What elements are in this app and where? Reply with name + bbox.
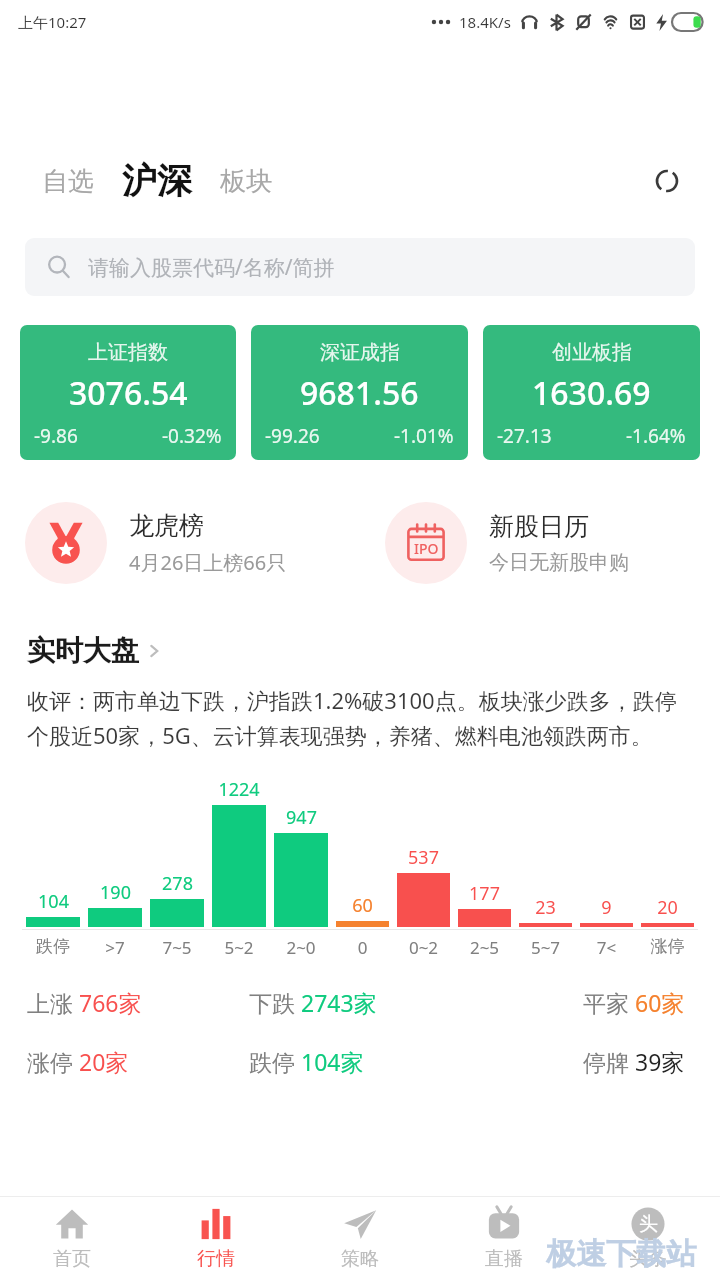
button[interactable]: 首页 xyxy=(0,1196,144,1280)
staticText: 停牌 xyxy=(583,1046,635,1077)
staticText: 1630.69 xyxy=(532,371,651,415)
button[interactable]: 深证成指 xyxy=(251,325,468,460)
staticText: 9681.56 xyxy=(300,371,419,415)
staticText: 涨停 xyxy=(27,1046,79,1077)
staticText: 1224 xyxy=(218,777,260,802)
staticText: 新股日历 xyxy=(489,511,589,542)
staticText: 上午10:27 xyxy=(18,12,87,32)
staticText: 20 xyxy=(657,895,678,920)
staticText: 177 xyxy=(469,881,500,906)
staticText: -9.86 xyxy=(34,423,78,449)
button[interactable]: 策略 xyxy=(288,1196,432,1280)
staticText: 平家 xyxy=(583,987,635,1018)
staticText: 0 xyxy=(332,936,393,959)
staticText: 9 xyxy=(601,895,612,920)
staticText: 自选 xyxy=(42,165,94,198)
staticText: 实时大盘 xyxy=(27,633,139,668)
staticText: 跌停 xyxy=(249,1046,301,1077)
staticText: 5~2 xyxy=(208,936,270,959)
button[interactable]: 沪深 xyxy=(108,159,206,203)
staticText: -1.64% xyxy=(626,423,686,449)
staticText: 涨停 xyxy=(637,936,698,957)
button[interactable]: 请输入股票代码/名称/简拼 xyxy=(25,238,695,296)
staticText: 2~0 xyxy=(270,936,332,959)
button[interactable]: 头 xyxy=(576,1196,720,1280)
staticText: 创业板指 xyxy=(552,340,632,365)
staticText: 766家 xyxy=(79,987,142,1018)
button[interactable]: 行情 xyxy=(144,1196,288,1280)
staticText: 18.4K/s xyxy=(459,12,511,32)
staticText: >7 xyxy=(84,936,146,959)
staticText: 947 xyxy=(286,805,317,830)
button[interactable]: 龙虎榜 xyxy=(0,497,360,589)
staticText: 板块 xyxy=(220,165,272,198)
staticText: 537 xyxy=(408,845,439,870)
staticText: 沪深 xyxy=(122,159,192,203)
staticText: 头条 xyxy=(629,1247,667,1271)
staticText: -1.01% xyxy=(394,423,454,449)
staticText: 请输入股票代码/名称/简拼 xyxy=(88,253,335,282)
button[interactable]: 直播 xyxy=(432,1196,576,1280)
staticText: 7~5 xyxy=(146,936,208,959)
staticText: 4月26日上榜66只 xyxy=(129,549,287,576)
staticText: 首页 xyxy=(53,1247,91,1271)
button[interactable]: 实时大盘 xyxy=(27,633,720,668)
button[interactable]: IPO xyxy=(360,497,720,589)
staticText: 7< xyxy=(576,936,637,959)
staticText: 60 xyxy=(352,893,373,918)
staticText: 行情 xyxy=(197,1247,235,1271)
staticText: 0~2 xyxy=(393,936,454,959)
staticText: -0.32% xyxy=(162,423,222,449)
staticText: IPO xyxy=(414,539,439,558)
staticText: 2743家 xyxy=(301,987,377,1018)
staticText: 39家 xyxy=(635,1046,685,1077)
staticText: 20家 xyxy=(79,1046,129,1077)
button[interactable]: 上证指数 xyxy=(20,325,236,460)
button[interactable]: 板块 xyxy=(206,165,286,198)
button[interactable]: 创业板指 xyxy=(483,325,700,460)
staticText: 收评：两市单边下跌，沪指跌1.2%破3100点。板块涨少跌多，跌停个股近50家，… xyxy=(27,685,693,751)
button[interactable]: 自选 xyxy=(0,165,108,198)
staticText: 3076.54 xyxy=(69,371,188,415)
staticText: 跌停 xyxy=(22,936,84,957)
staticText: 104家 xyxy=(301,1046,364,1077)
staticText: 上涨 xyxy=(27,987,79,1018)
staticText: 5~7 xyxy=(515,936,576,959)
staticText: 今日无新股申购 xyxy=(489,550,629,575)
button[interactable]: Refresh xyxy=(650,164,684,198)
staticText: 23 xyxy=(535,895,556,920)
staticText: -99.26 xyxy=(265,423,320,449)
staticText: 头 xyxy=(639,1212,658,1236)
staticText: 龙虎榜 xyxy=(129,510,204,541)
staticText: 278 xyxy=(162,871,193,896)
staticText: 深证成指 xyxy=(320,340,400,365)
staticText: 下跌 xyxy=(249,987,301,1018)
staticText: 策略 xyxy=(341,1247,379,1271)
staticText: 60家 xyxy=(635,987,685,1018)
staticText: 上证指数 xyxy=(88,340,168,365)
staticText: 190 xyxy=(100,880,131,905)
staticText: 2~5 xyxy=(454,936,515,959)
staticText: -27.13 xyxy=(497,423,552,449)
staticText: 极速下载站 xyxy=(546,1235,696,1273)
staticText: 104 xyxy=(38,889,69,914)
staticText: 直播 xyxy=(485,1247,523,1271)
